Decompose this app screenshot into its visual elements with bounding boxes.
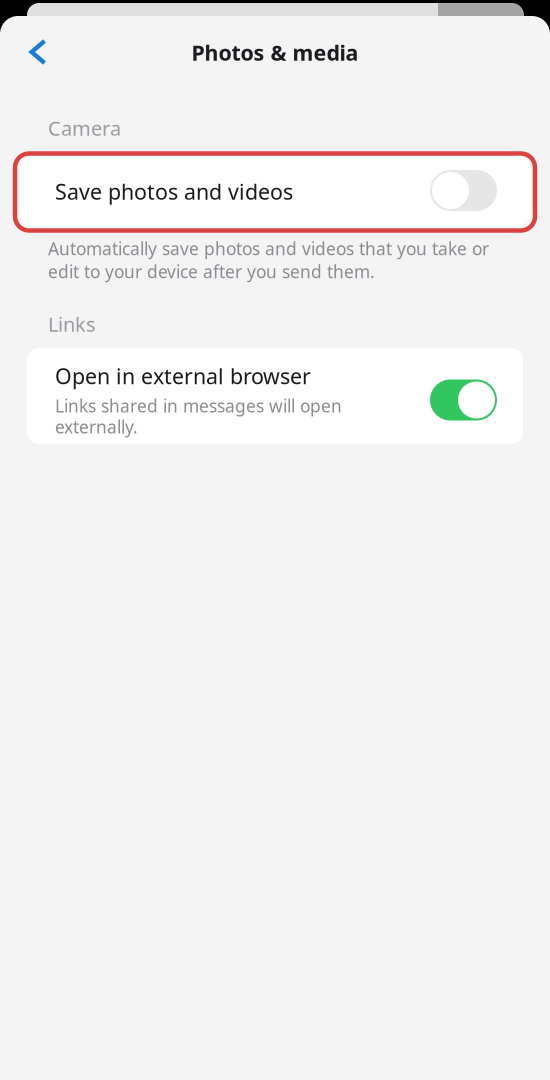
staticText: Photos & media <box>191 38 358 67</box>
staticText: Open in external browser <box>55 362 311 390</box>
staticText: Automatically save photos and videos tha… <box>48 237 489 283</box>
staticText: Links <box>48 311 96 337</box>
button[interactable]: Save photos and videos <box>19 156 531 227</box>
staticText: Save photos and videos <box>55 177 293 206</box>
staticText: Camera <box>48 115 121 141</box>
button[interactable]: Open in external browser <box>27 348 523 444</box>
button[interactable]: Back <box>12 26 64 78</box>
staticText: Links shared in messages will open exter… <box>55 394 342 438</box>
